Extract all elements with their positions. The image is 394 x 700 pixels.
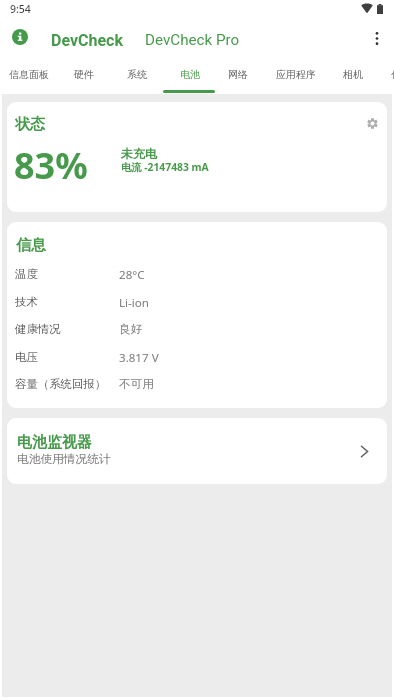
staticText: 信 <box>391 68 394 81</box>
staticText: 应用程序 <box>276 68 316 81</box>
staticText: Li-ion <box>119 295 149 311</box>
button[interactable]: 系统 <box>121 58 153 94</box>
button[interactable]: 相机 <box>337 58 369 94</box>
staticText: 温度 <box>15 267 38 281</box>
staticText: 电池 <box>180 68 200 81</box>
button[interactable]: 硬件 <box>68 58 100 94</box>
staticText: 28°C <box>119 267 145 283</box>
staticText: 信息面板 <box>9 68 49 81</box>
staticText: 3.817 V <box>119 350 159 366</box>
staticText: 技术 <box>15 295 38 309</box>
button[interactable]: 状态 <box>7 102 387 212</box>
staticText: 83% <box>14 141 88 190</box>
staticText: 电流 -2147483 mA <box>121 160 209 174</box>
button[interactable]: 信息面板 <box>3 58 55 94</box>
button[interactable]: 电池监视器 <box>7 418 387 484</box>
button[interactable]: 网络 <box>222 58 254 94</box>
staticText: 容量（系统回报） <box>15 377 107 391</box>
staticText: 电压 <box>15 350 38 364</box>
staticText: 硬件 <box>74 68 94 81</box>
staticText: 9:54 <box>10 2 31 16</box>
staticText: DevCheck Pro <box>145 31 240 49</box>
staticText: 网络 <box>228 68 248 81</box>
staticText: 未充电 <box>121 146 157 161</box>
staticText: 信息 <box>16 236 46 255</box>
button[interactable]: 信 <box>388 58 394 94</box>
button[interactable]: 电池 <box>174 58 206 94</box>
button[interactable]: 应用程序 <box>270 58 322 94</box>
staticText: 状态 <box>15 115 45 134</box>
staticText: 相机 <box>343 68 363 81</box>
staticText: 健康情况 <box>15 322 61 336</box>
staticText: 系统 <box>127 68 147 81</box>
staticText: 电池监视器 <box>17 433 92 452</box>
button[interactable]: More options <box>364 25 390 51</box>
staticText: DevCheck <box>51 31 123 50</box>
staticText: 电池使用情况统计 <box>17 452 111 467</box>
staticText: 不可用 <box>119 377 154 392</box>
staticText: 良好 <box>119 322 143 337</box>
button[interactable]: Settings <box>359 110 385 136</box>
